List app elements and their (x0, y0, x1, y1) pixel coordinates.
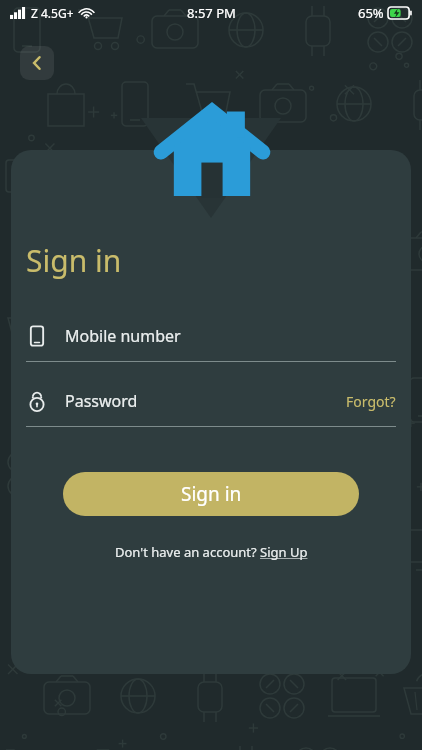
staticText: Password (65, 390, 138, 412)
button[interactable]: Forgot? (346, 392, 396, 411)
button[interactable]: Back (20, 46, 54, 80)
button[interactable]: Sign in (63, 472, 359, 516)
staticText: Sign in (181, 481, 242, 507)
staticText: 8:57 PM (187, 4, 236, 22)
staticText: Z 4.5G+ (31, 5, 74, 21)
staticText: 65% (358, 4, 384, 22)
button[interactable]: Password (26, 390, 396, 427)
button[interactable]: Mobile number (26, 325, 396, 362)
button[interactable]: Don't have an account? Sign Up (115, 543, 308, 561)
staticText: Sign in (26, 240, 122, 281)
staticText: Mobile number (65, 325, 181, 347)
